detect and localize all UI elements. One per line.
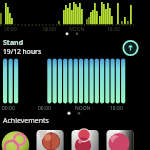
staticText: 00:00 [2, 105, 15, 112]
staticText: NOON [75, 105, 91, 112]
staticText: 00:00 [4, 26, 17, 33]
staticText: 18:00 [110, 105, 123, 112]
button[interactable] [106, 129, 134, 150]
staticText: NOON [69, 26, 85, 33]
staticText: 06:00 [38, 105, 51, 112]
button[interactable] [71, 129, 99, 150]
button[interactable] [122, 39, 140, 57]
staticText: Achievements [3, 116, 49, 126]
staticText: Stand [3, 38, 24, 48]
staticText: 18:00 [107, 26, 120, 33]
button[interactable] [1, 129, 29, 150]
button[interactable] [36, 129, 64, 150]
staticText: 06:00 [43, 26, 56, 33]
staticText: 19/12 hours [3, 47, 42, 56]
